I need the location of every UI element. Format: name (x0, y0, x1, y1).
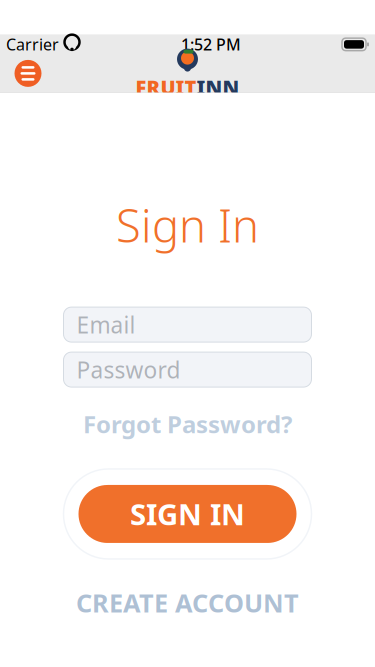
staticText: Email (76, 309, 135, 340)
staticText: FRUIT (135, 74, 196, 100)
button[interactable]: Menu (8, 53, 48, 93)
staticText: CREATE ACCOUNT (76, 586, 299, 620)
staticText: SIGN IN (130, 494, 245, 533)
button[interactable]: Password (63, 352, 311, 387)
staticText: Carrier (6, 34, 59, 55)
button[interactable]: Email (63, 307, 311, 342)
button[interactable]: Forgot Password? (69, 404, 306, 444)
staticText: Forgot Password? (83, 408, 292, 440)
staticText: 1:52 PM (181, 34, 241, 55)
staticText: Sign In (116, 195, 259, 255)
staticText: INN (196, 74, 239, 100)
staticText: Password (76, 354, 180, 385)
button[interactable]: CREATE ACCOUNT (62, 581, 313, 625)
button[interactable]: SIGN IN (63, 469, 311, 559)
